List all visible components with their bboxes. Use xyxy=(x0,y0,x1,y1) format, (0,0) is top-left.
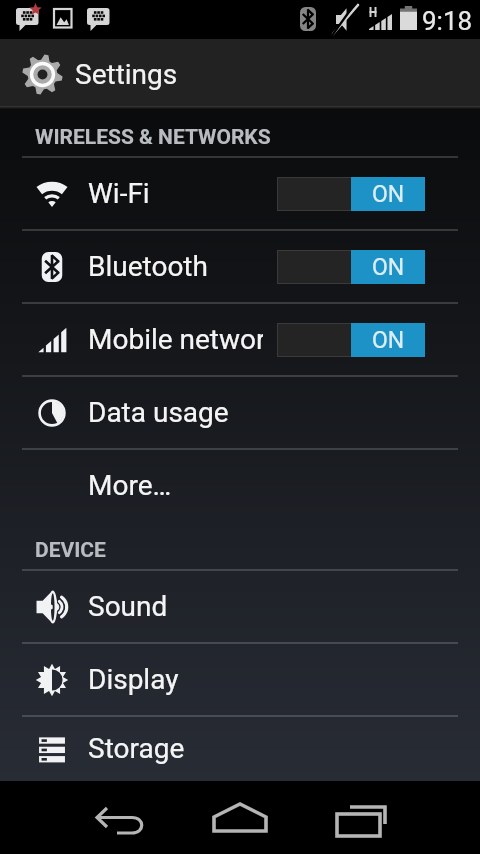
staticText: Sound xyxy=(88,590,168,623)
staticText: Bluetooth xyxy=(88,250,208,283)
button[interactable]: ON xyxy=(277,323,425,357)
staticText: ON xyxy=(372,327,405,354)
button[interactable]: Home xyxy=(210,788,270,848)
button[interactable]: Recent apps xyxy=(332,788,392,848)
button[interactable]: Data usage xyxy=(0,377,480,450)
button[interactable]: Wi-Fi xyxy=(0,158,480,231)
button[interactable]: Sound xyxy=(0,571,480,644)
button[interactable]: ON xyxy=(277,250,425,284)
staticText: Mobile network xyxy=(88,323,263,356)
staticText: Data usage xyxy=(88,396,229,429)
staticText: 9:18 xyxy=(422,6,473,36)
staticText: WIRELESS & NETWORKS xyxy=(35,125,271,150)
staticText: Wi-Fi xyxy=(88,177,150,210)
staticText: Settings xyxy=(75,58,178,91)
button[interactable]: Bluetooth xyxy=(0,231,480,304)
button[interactable]: Storage xyxy=(0,717,480,781)
button[interactable]: Back xyxy=(90,788,150,848)
button[interactable]: More… xyxy=(0,450,480,523)
staticText: ON xyxy=(372,254,405,281)
button[interactable]: Display xyxy=(0,644,480,717)
staticText: Display xyxy=(88,663,179,696)
button[interactable]: Mobile network xyxy=(0,304,480,377)
staticText: Storage xyxy=(88,732,185,765)
staticText: ON xyxy=(372,181,405,208)
staticText: DEVICE xyxy=(35,538,106,563)
staticText: More… xyxy=(88,469,172,502)
button[interactable]: ON xyxy=(277,177,425,211)
